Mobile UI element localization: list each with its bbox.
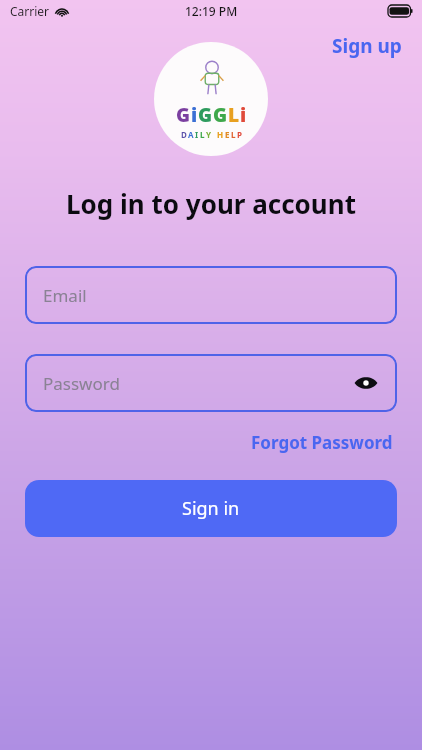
- button[interactable]: Show password: [349, 366, 383, 400]
- button[interactable]: Sign in: [25, 480, 397, 537]
- staticText: Log in to your account: [0, 186, 422, 221]
- staticText: Carrier: [10, 3, 50, 19]
- staticText: H: [217, 129, 225, 140]
- button[interactable]: Password: [25, 354, 397, 412]
- staticText: i: [240, 102, 247, 128]
- staticText: 12:19 PM: [185, 3, 238, 19]
- staticText: L: [228, 102, 240, 128]
- staticText: Forgot Password: [251, 431, 393, 454]
- staticText: G: [176, 102, 191, 128]
- button[interactable]: Forgot Password: [247, 427, 397, 458]
- staticText: I: [195, 129, 200, 140]
- staticText: D: [181, 129, 188, 140]
- staticText: Y: [206, 129, 213, 140]
- staticText: G: [198, 102, 213, 128]
- staticText: Password: [43, 372, 120, 395]
- staticText: G: [213, 102, 228, 128]
- button[interactable]: Email: [25, 266, 397, 324]
- staticText: Sign in: [182, 496, 240, 521]
- button[interactable]: Sign up: [326, 30, 408, 62]
- staticText: Sign up: [332, 33, 402, 59]
- staticText: A: [188, 129, 195, 140]
- staticText: i: [191, 102, 198, 128]
- staticText: P: [237, 129, 243, 140]
- staticText: L: [200, 129, 206, 140]
- staticText: E: [225, 129, 231, 140]
- staticText: L: [231, 129, 237, 140]
- staticText: Email: [43, 284, 87, 307]
